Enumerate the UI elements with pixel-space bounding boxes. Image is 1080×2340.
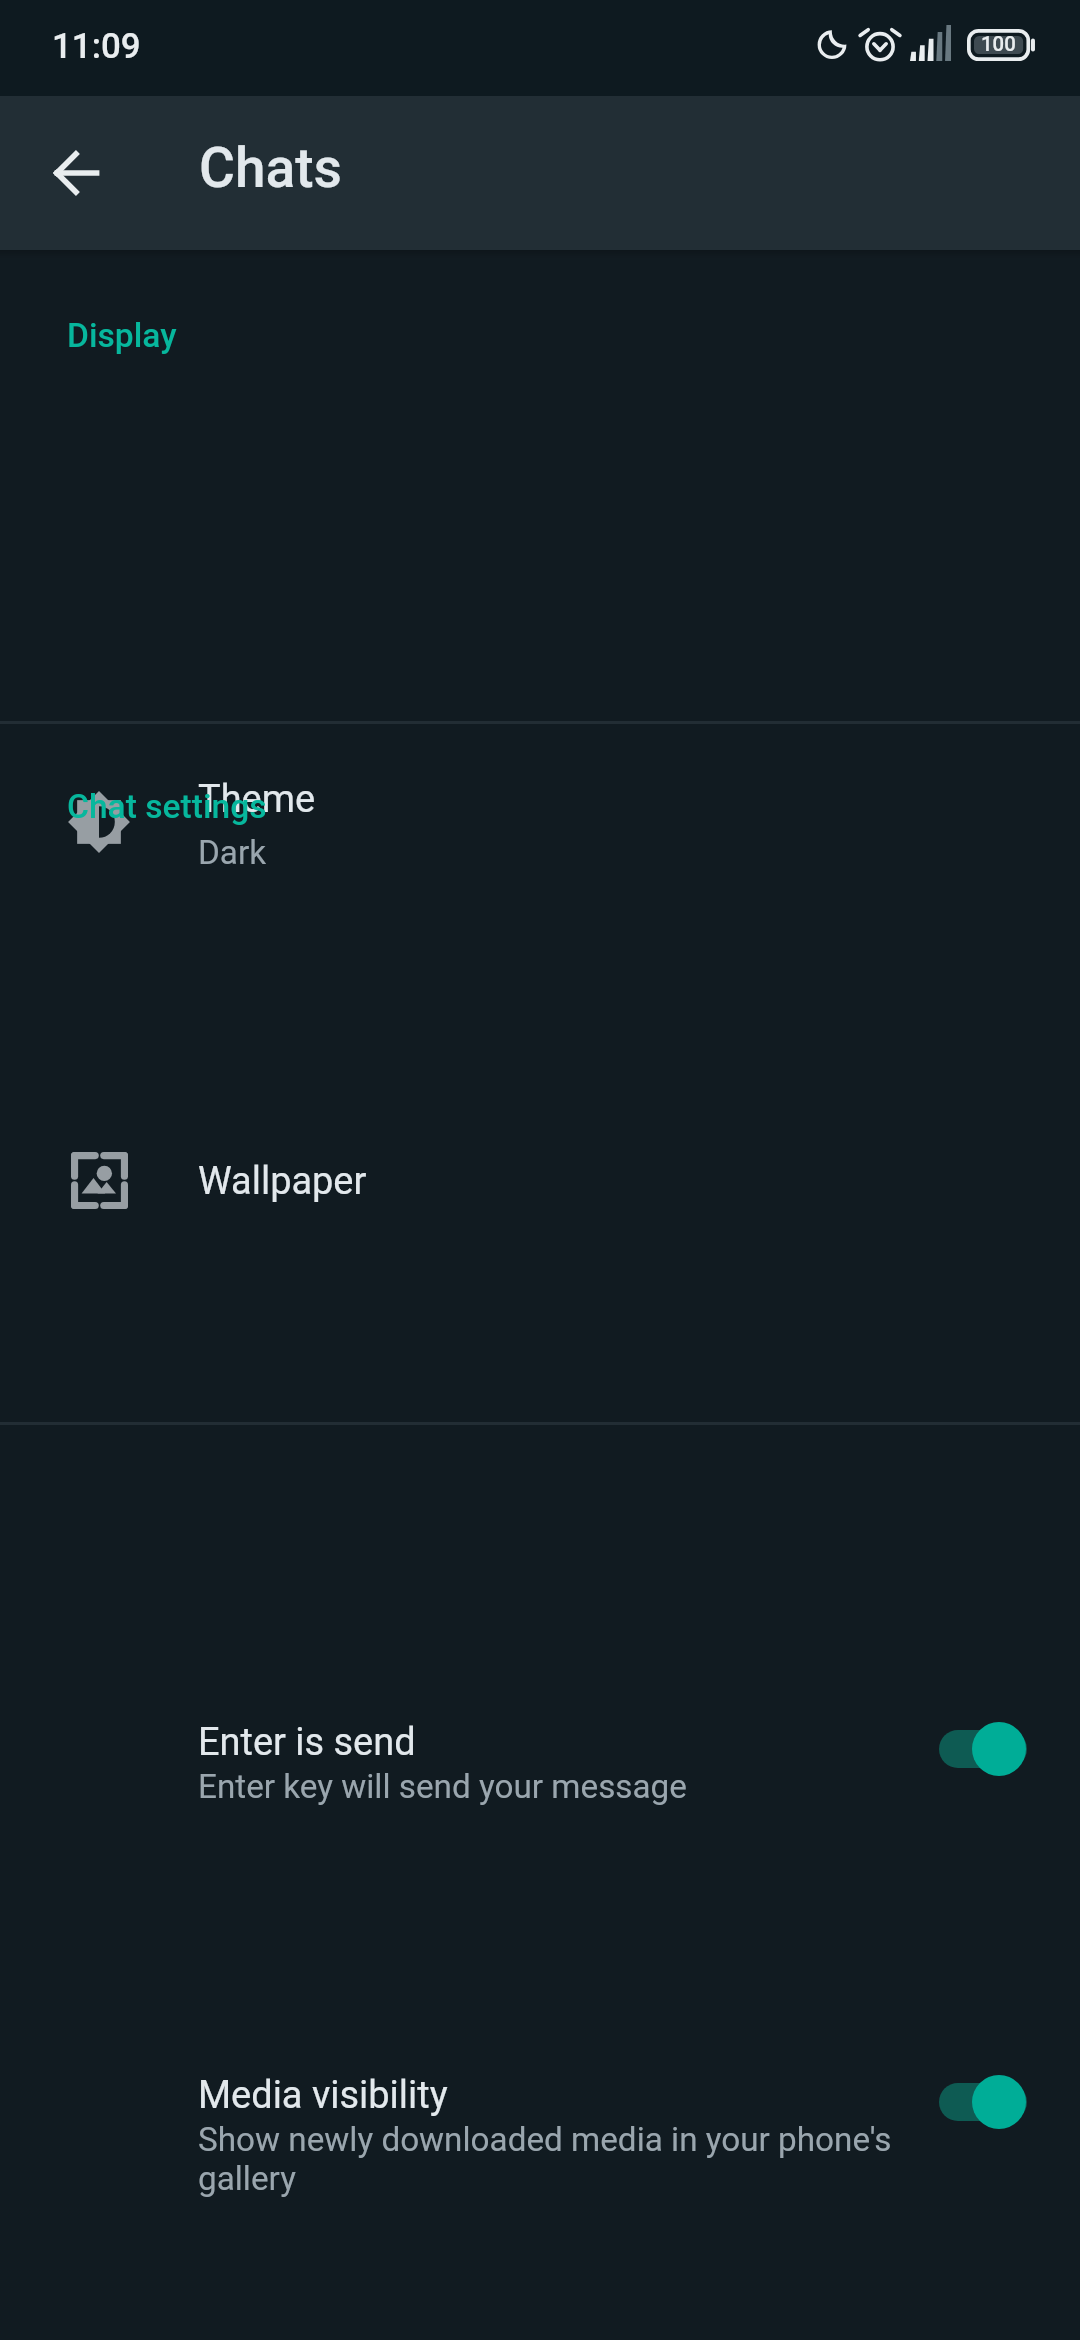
- button[interactable]: Media visibility: [0, 1020, 1080, 1215]
- button[interactable]: Enter is send: [0, 845, 1080, 990]
- button[interactable]: Chat backup: [0, 1650, 1080, 1790]
- staticText: Display: [67, 316, 177, 355]
- button[interactable]: Toggle: [925, 2064, 1040, 2140]
- staticText: 100: [981, 32, 1016, 56]
- staticText: 11:09: [52, 26, 141, 67]
- button[interactable]: Navigate up: [11, 107, 143, 239]
- button[interactable]: Toggle: [925, 1711, 1040, 1787]
- staticText: Media visibility: [198, 2073, 448, 2117]
- staticText: Show newly downloaded media in your phon…: [198, 2120, 928, 2198]
- staticText: Chat settings: [67, 787, 267, 826]
- staticText: Chats: [199, 136, 342, 200]
- staticText: Theme: [198, 777, 316, 821]
- staticText: Enter key will send your message: [198, 1767, 1058, 1806]
- staticText: Dark: [198, 833, 1058, 872]
- staticText: Enter is send: [198, 1720, 416, 1764]
- staticText: Wallpaper: [198, 1159, 367, 1203]
